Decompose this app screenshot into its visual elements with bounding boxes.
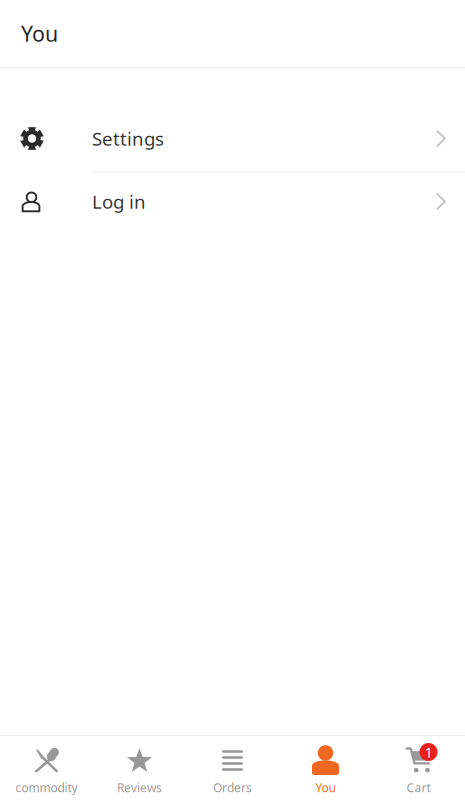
button[interactable]: Settings (0, 106, 465, 172)
button[interactable]: commodity (0, 736, 93, 800)
staticText: Orders (213, 779, 252, 795)
button[interactable]: You (279, 736, 372, 800)
staticText: Log in (92, 189, 146, 214)
staticText: commodity (15, 779, 77, 795)
staticText: You (315, 779, 335, 795)
staticText: Cart (406, 779, 430, 795)
button[interactable]: 1 (372, 736, 465, 800)
button[interactable]: Log in (0, 172, 465, 231)
button[interactable]: Orders (186, 736, 279, 800)
button[interactable]: Reviews (93, 736, 186, 800)
staticText: 1 (424, 742, 432, 762)
staticText: Reviews (117, 779, 162, 795)
staticText: Settings (92, 126, 164, 151)
staticText: You (21, 19, 58, 48)
